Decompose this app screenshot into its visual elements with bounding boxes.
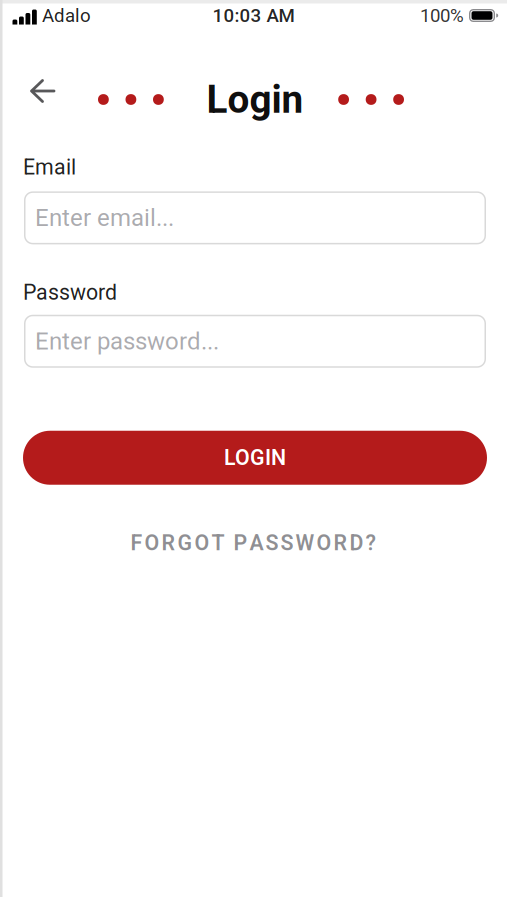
button[interactable]: Enter password... bbox=[24, 315, 486, 368]
staticText: F O R G O T P A S S W O R D ? bbox=[130, 531, 376, 555]
staticText: Adalo bbox=[42, 5, 91, 26]
button[interactable]: Enter email... bbox=[24, 191, 486, 244]
button[interactable]: Back bbox=[0, 68, 64, 113]
staticText: Login bbox=[206, 77, 303, 122]
staticText: Enter email... bbox=[35, 204, 174, 232]
staticText: Password bbox=[23, 280, 117, 305]
staticText: Email bbox=[23, 155, 76, 179]
staticText: 10:03 AM bbox=[212, 5, 294, 26]
button[interactable]: F O R G O T P A S S W O R D ? bbox=[122, 525, 384, 561]
staticText: LOGIN bbox=[224, 446, 286, 470]
staticText: 100% bbox=[420, 5, 464, 26]
staticText: Enter password... bbox=[35, 327, 219, 355]
button[interactable]: LOGIN bbox=[23, 431, 487, 485]
